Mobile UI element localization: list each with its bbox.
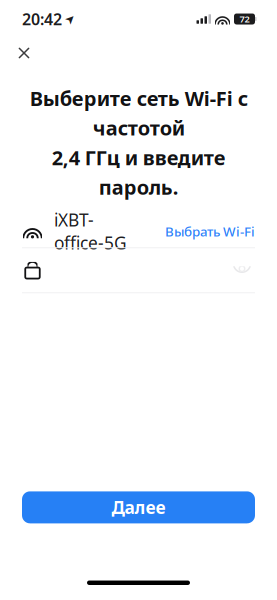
staticText: Выбрать Wi-Fi [165,222,255,240]
button[interactable]: Далее [22,491,255,523]
staticText: 72 [239,13,249,25]
button[interactable]: Показать пароль [229,258,255,282]
staticText: 20:42 [22,8,62,30]
button[interactable]: Закрыть [7,38,41,68]
staticText: Далее [111,496,165,519]
button[interactable]: iXBT-office-5G [0,215,277,247]
staticText: iXBT-office-5G [54,208,127,254]
staticText: ➤ [65,12,75,26]
staticText: Выберите сеть Wi-Fi с частотой 2,4 ГГц и… [29,85,247,200]
